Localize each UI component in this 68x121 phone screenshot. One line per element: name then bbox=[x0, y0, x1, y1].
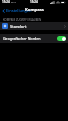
button[interactable]: Geografischer Norden bbox=[0, 34, 68, 43]
staticText: Geografischer Norden bbox=[3, 36, 41, 41]
staticText: KOMPASS ZUGRIFF ERLAUBEN bbox=[3, 18, 42, 22]
staticText: 15:24 bbox=[2, 0, 10, 4]
staticText: Kompass bbox=[25, 7, 44, 13]
button[interactable]: Geografischer Norden toggle bbox=[57, 36, 66, 41]
staticText: Einstellungen bbox=[6, 8, 32, 13]
button[interactable]: Einstellungen bbox=[0, 8, 34, 13]
staticText: 15:24 bbox=[30, 0, 38, 4]
staticText: Standort bbox=[10, 24, 27, 29]
button[interactable]: Standort bbox=[0, 22, 68, 30]
